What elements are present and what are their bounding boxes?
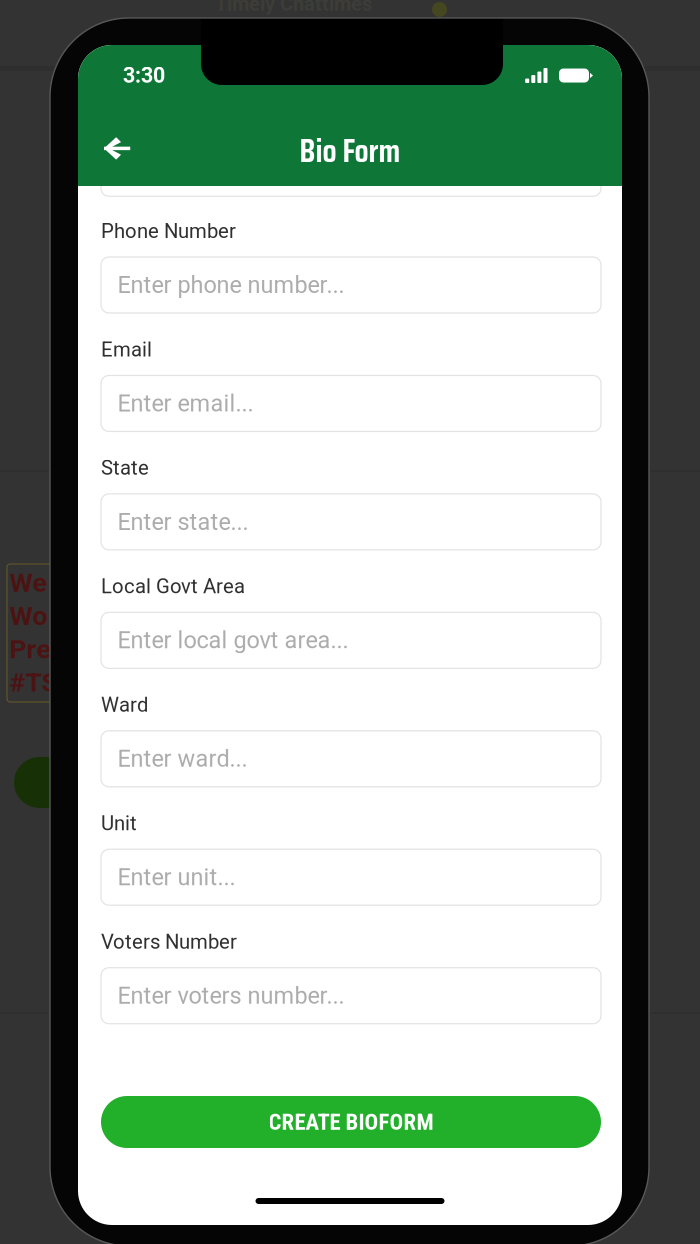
staticText: Enter local govt area... — [117, 627, 348, 654]
button[interactable]: Enter phone number... — [101, 257, 601, 313]
staticText: Local Govt Area — [101, 574, 245, 598]
staticText: Wo — [9, 600, 47, 632]
button[interactable]: Enter state... — [101, 494, 601, 550]
staticText: Enter unit... — [117, 863, 235, 891]
staticText: Voters Number — [101, 930, 237, 954]
staticText: Ward — [101, 693, 148, 717]
staticText: Timely Chattimes — [215, 0, 372, 16]
staticText: State — [101, 456, 149, 480]
staticText: Enter phone number... — [117, 271, 344, 299]
button[interactable]: Enter ward... — [101, 731, 601, 787]
staticText: Bio Form — [299, 126, 400, 176]
staticText: CREATE BIOFORM — [268, 1109, 433, 1135]
staticText: #TS — [9, 667, 57, 698]
button[interactable]: Enter unit... — [101, 849, 601, 905]
staticText: Enter ward... — [117, 745, 247, 773]
staticText: Phone Number — [101, 219, 236, 243]
button[interactable]: CREATE BIOFORM — [101, 1096, 601, 1148]
staticText: Email — [101, 338, 152, 361]
staticText: 3:30 — [123, 63, 165, 88]
staticText: We — [9, 567, 46, 598]
staticText: Enter state... — [117, 508, 248, 536]
button[interactable]: Enter email... — [101, 375, 601, 431]
staticText: Pre — [9, 633, 50, 665]
staticText: Enter email... — [117, 390, 253, 417]
button[interactable]: Enter local govt area... — [101, 612, 601, 668]
staticText: Unit — [101, 811, 137, 835]
staticText: Enter voters number... — [117, 982, 344, 1009]
button[interactable]: Enter voters number... — [101, 968, 601, 1024]
button[interactable]: Back — [90, 121, 144, 175]
